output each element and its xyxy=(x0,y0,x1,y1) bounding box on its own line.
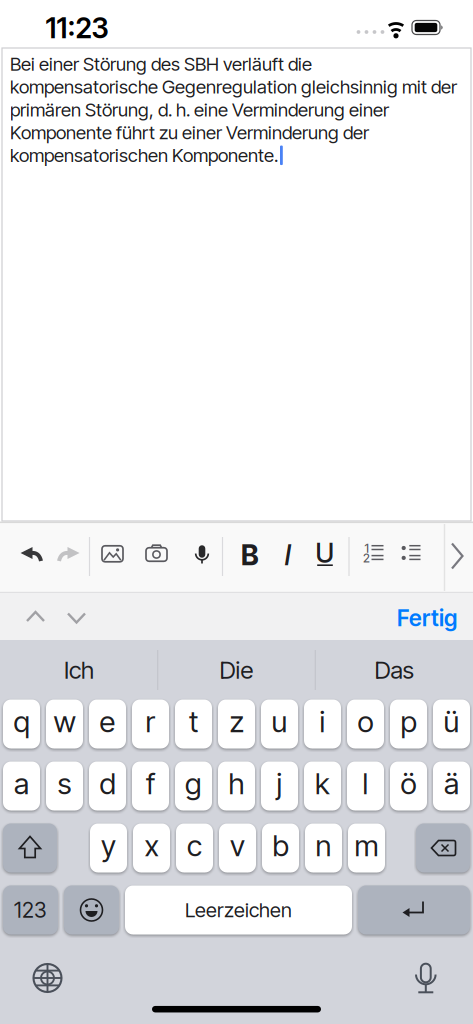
button[interactable]: Fertig xyxy=(384,597,464,637)
staticText: n xyxy=(315,828,331,863)
button[interactable]: Dictation xyxy=(185,534,219,574)
staticText: primären Störung, d. h. eine Verminderun… xyxy=(10,99,389,121)
button[interactable]: Leerzeichen xyxy=(125,885,352,934)
staticText: t xyxy=(189,704,198,739)
staticText: g xyxy=(185,766,202,801)
button[interactable]: z xyxy=(218,699,255,748)
staticText: r xyxy=(145,704,155,739)
staticText: Leerzeichen xyxy=(185,898,292,922)
staticText: m xyxy=(354,828,378,863)
button[interactable]: Die xyxy=(161,647,311,693)
button[interactable]: ä xyxy=(433,761,470,810)
staticText: 1 xyxy=(364,541,368,555)
button[interactable]: 123 xyxy=(3,885,58,934)
button[interactable]: Italic xyxy=(270,535,304,575)
button[interactable]: Next field xyxy=(59,599,93,635)
button[interactable]: w xyxy=(46,699,83,748)
staticText: b xyxy=(272,828,288,863)
staticText: q xyxy=(13,704,29,739)
button[interactable]: Dictate xyxy=(404,956,448,1000)
button[interactable]: f xyxy=(132,761,169,810)
button[interactable]: k xyxy=(304,761,341,810)
button[interactable]: Ich xyxy=(4,647,154,693)
staticText: ü xyxy=(443,704,459,739)
button[interactable]: Emoji xyxy=(64,885,119,934)
button[interactable]: Bold xyxy=(233,535,267,575)
button[interactable]: Redo xyxy=(52,536,88,576)
staticText: o xyxy=(357,704,373,739)
button[interactable]: u xyxy=(261,699,298,748)
button[interactable]: o xyxy=(347,699,384,748)
button[interactable]: Delete xyxy=(416,823,470,872)
staticText: x xyxy=(144,828,158,863)
staticText: 2 xyxy=(363,551,370,565)
staticText: v xyxy=(230,828,245,863)
staticText: ä xyxy=(444,766,459,801)
staticText: Fertig xyxy=(397,605,457,631)
staticText: s xyxy=(57,766,71,801)
button[interactable]: Das xyxy=(319,647,469,693)
staticText: h xyxy=(228,766,244,801)
staticText: d xyxy=(99,766,115,801)
staticText: Das xyxy=(374,656,413,684)
button[interactable]: v xyxy=(219,823,256,872)
button[interactable]: d xyxy=(89,761,126,810)
button[interactable]: r xyxy=(132,699,169,748)
staticText: e xyxy=(99,704,115,739)
button[interactable]: Previous field xyxy=(18,599,52,635)
button[interactable]: h xyxy=(218,761,255,810)
staticText: Bei einer Störung des SBH verläuft die xyxy=(10,53,312,75)
staticText: Die xyxy=(219,656,253,684)
staticText: ö xyxy=(400,766,416,801)
button[interactable]: Numbered list xyxy=(356,534,392,574)
staticText: B xyxy=(241,538,259,571)
button[interactable]: b xyxy=(262,823,299,872)
staticText: z xyxy=(229,704,243,739)
staticText: l xyxy=(362,766,368,801)
button[interactable]: c xyxy=(176,823,213,872)
button[interactable]: j xyxy=(261,761,298,810)
button[interactable]: More formatting options xyxy=(444,525,472,589)
staticText: u xyxy=(271,704,287,739)
button[interactable]: Undo xyxy=(14,536,50,576)
staticText: k xyxy=(315,766,330,801)
button[interactable]: x xyxy=(133,823,170,872)
button[interactable]: Shift xyxy=(3,823,57,872)
button[interactable]: p xyxy=(390,699,427,748)
staticText: U xyxy=(315,537,334,569)
button[interactable]: y xyxy=(90,823,127,872)
button[interactable]: g xyxy=(175,761,212,810)
button[interactable]: Underline xyxy=(308,535,342,575)
staticText: Komponente führt zu einer Verminderung d… xyxy=(10,121,369,143)
button[interactable]: q xyxy=(3,699,40,748)
button[interactable]: s xyxy=(46,761,83,810)
staticText: 123 xyxy=(14,897,47,923)
button[interactable]: e xyxy=(89,699,126,748)
button[interactable]: ö xyxy=(390,761,427,810)
button[interactable]: ü xyxy=(433,699,470,748)
button[interactable]: Camera xyxy=(137,534,175,574)
button[interactable]: l xyxy=(347,761,384,810)
staticText: kompensatorische Gegenregulation gleichs… xyxy=(10,76,457,98)
staticText: 11:23 xyxy=(45,11,108,44)
staticText: f xyxy=(146,766,155,801)
staticText: I xyxy=(284,538,290,571)
staticText: kompensatorischen Komponente. xyxy=(10,144,278,166)
staticText: c xyxy=(187,828,202,863)
button[interactable]: i xyxy=(304,699,341,748)
button[interactable]: Insert photo xyxy=(93,534,131,574)
button[interactable]: Return xyxy=(358,885,470,934)
button[interactable]: n xyxy=(305,823,342,872)
button[interactable]: Next keyboard xyxy=(25,956,69,1000)
button[interactable]: t xyxy=(175,699,212,748)
staticText: a xyxy=(14,766,29,801)
staticText: Ich xyxy=(64,656,94,684)
staticText: y xyxy=(101,828,116,863)
staticText: w xyxy=(53,704,75,739)
staticText: p xyxy=(400,704,416,739)
staticText: j xyxy=(276,766,282,801)
staticText: i xyxy=(319,704,325,739)
button[interactable]: a xyxy=(3,761,40,810)
button[interactable]: m xyxy=(348,823,385,872)
button[interactable]: Bulleted list xyxy=(391,534,427,574)
